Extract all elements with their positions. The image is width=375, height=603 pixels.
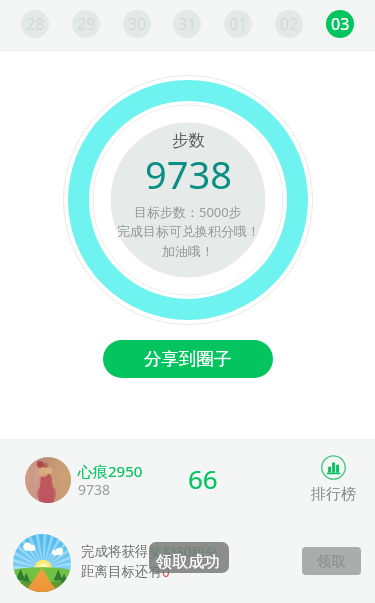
staticText: 完成将获得 [81,543,149,560]
staticText: 奖励30积分 [149,543,219,561]
button[interactable]: 29 [72,10,100,38]
button[interactable]: 领取 [302,547,361,575]
staticText: 加油哦！ [162,243,214,259]
staticText: 距离目标还有 [81,563,162,580]
staticText: 分享到圈子 [144,348,232,370]
staticText: 66 [188,461,218,496]
staticText: 28 [26,13,45,35]
button[interactable]: 心痕2950 [0,440,375,520]
button[interactable]: 30 [123,10,151,38]
button[interactable]: 分享到圈子 [103,340,273,378]
button[interactable]: 01 [224,10,252,38]
button[interactable]: 02 [275,10,303,38]
staticText: 03 [331,13,350,35]
staticText: 0 [162,563,170,581]
staticText: 31 [178,13,197,35]
staticText: 01 [229,13,248,35]
button[interactable]: 28 [21,10,49,38]
staticText: 心痕2950 [78,461,143,481]
button[interactable]: 31 [173,10,201,38]
staticText: 步数 [172,130,205,151]
staticText: 领取成功 [156,552,220,572]
button[interactable]: 03 [326,10,354,38]
staticText: 9738 [145,148,232,200]
staticText: 02 [280,13,299,35]
staticText: 9738 [78,480,111,499]
staticText: 排行榜 [311,485,356,504]
staticText: 29 [77,13,96,35]
staticText: 目标步数：5000步 [134,203,242,221]
button[interactable]: 排行榜 [306,455,360,504]
staticText: 完成目标可兑换积分哦！ [117,223,260,239]
staticText: 30 [128,13,147,35]
staticText: 领取 [317,552,346,570]
